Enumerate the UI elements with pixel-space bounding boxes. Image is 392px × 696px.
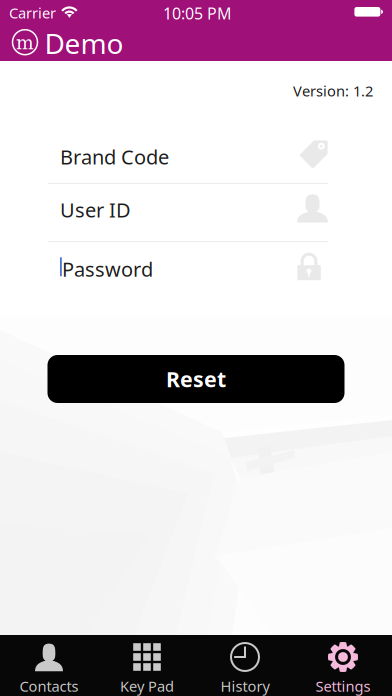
staticText: Reset [166, 365, 226, 393]
button[interactable]: Brand Code [48, 123, 344, 175]
button[interactable]: User ID [48, 184, 344, 241]
button[interactable]: History [196, 635, 294, 696]
staticText: History [220, 676, 269, 696]
staticText: Contacts [19, 676, 78, 696]
button[interactable]: Settings [294, 635, 392, 696]
staticText: Settings [315, 676, 370, 696]
staticText: m [16, 32, 34, 53]
staticText: Demo [44, 25, 123, 62]
button[interactable]: Reset [47, 355, 344, 403]
button[interactable]: Key Pad [98, 635, 196, 696]
staticText: Carrier [9, 3, 56, 23]
staticText: Password [62, 256, 153, 282]
staticText: 10:05 PM [163, 3, 232, 24]
button[interactable]: Password [48, 242, 344, 298]
staticText: User ID [60, 196, 131, 223]
staticText: Brand Code [60, 143, 169, 170]
staticText: Key Pad [120, 676, 174, 696]
staticText: Version: 1.2 [293, 81, 373, 100]
button[interactable]: Contacts [0, 635, 98, 696]
